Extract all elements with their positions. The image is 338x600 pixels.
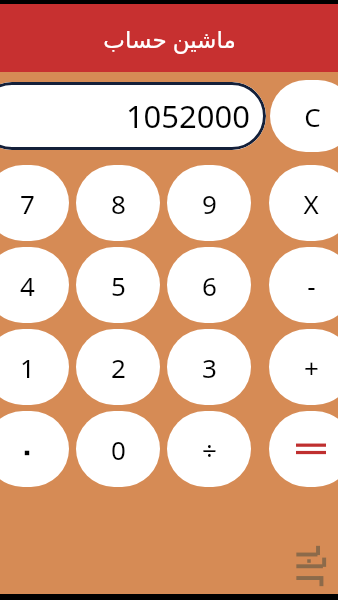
button[interactable]: Eight	[76, 165, 160, 241]
button[interactable]: Decimal point	[0, 411, 69, 487]
button[interactable]: One	[0, 329, 69, 405]
staticText: 7	[20, 186, 35, 221]
button[interactable]: Divide	[167, 411, 251, 487]
button[interactable]: Zero	[76, 411, 160, 487]
staticText: 1052000	[125, 95, 250, 137]
button[interactable]: Seven	[0, 165, 69, 241]
button[interactable]: Clear	[270, 80, 338, 152]
button[interactable]: 1052000	[0, 82, 266, 150]
staticText: 8	[111, 186, 126, 221]
staticText: 6	[202, 268, 217, 303]
staticText: 9	[202, 186, 217, 221]
staticText: 1	[20, 350, 35, 385]
staticText: ÷	[202, 432, 217, 467]
staticText: 5	[111, 268, 126, 303]
staticText: ماشین حساب	[103, 23, 236, 54]
button[interactable]: Subtract	[269, 247, 338, 323]
staticText: 2	[111, 350, 126, 385]
button[interactable]: Five	[76, 247, 160, 323]
button[interactable]: Two	[76, 329, 160, 405]
button[interactable]: Three	[167, 329, 251, 405]
staticText: 4	[20, 268, 35, 303]
button[interactable]: Multiply	[269, 165, 338, 241]
button[interactable]: Four	[0, 247, 69, 323]
staticText: X	[303, 186, 319, 221]
button[interactable]: Add	[269, 329, 338, 405]
staticText: C	[304, 99, 321, 134]
button[interactable]: Six	[167, 247, 251, 323]
button[interactable]: Nine	[167, 165, 251, 241]
staticText: -	[307, 268, 316, 303]
button[interactable]: Equals	[269, 411, 338, 487]
staticText: 3	[202, 350, 217, 385]
staticText: +	[304, 350, 319, 385]
staticText: 0	[111, 432, 126, 467]
